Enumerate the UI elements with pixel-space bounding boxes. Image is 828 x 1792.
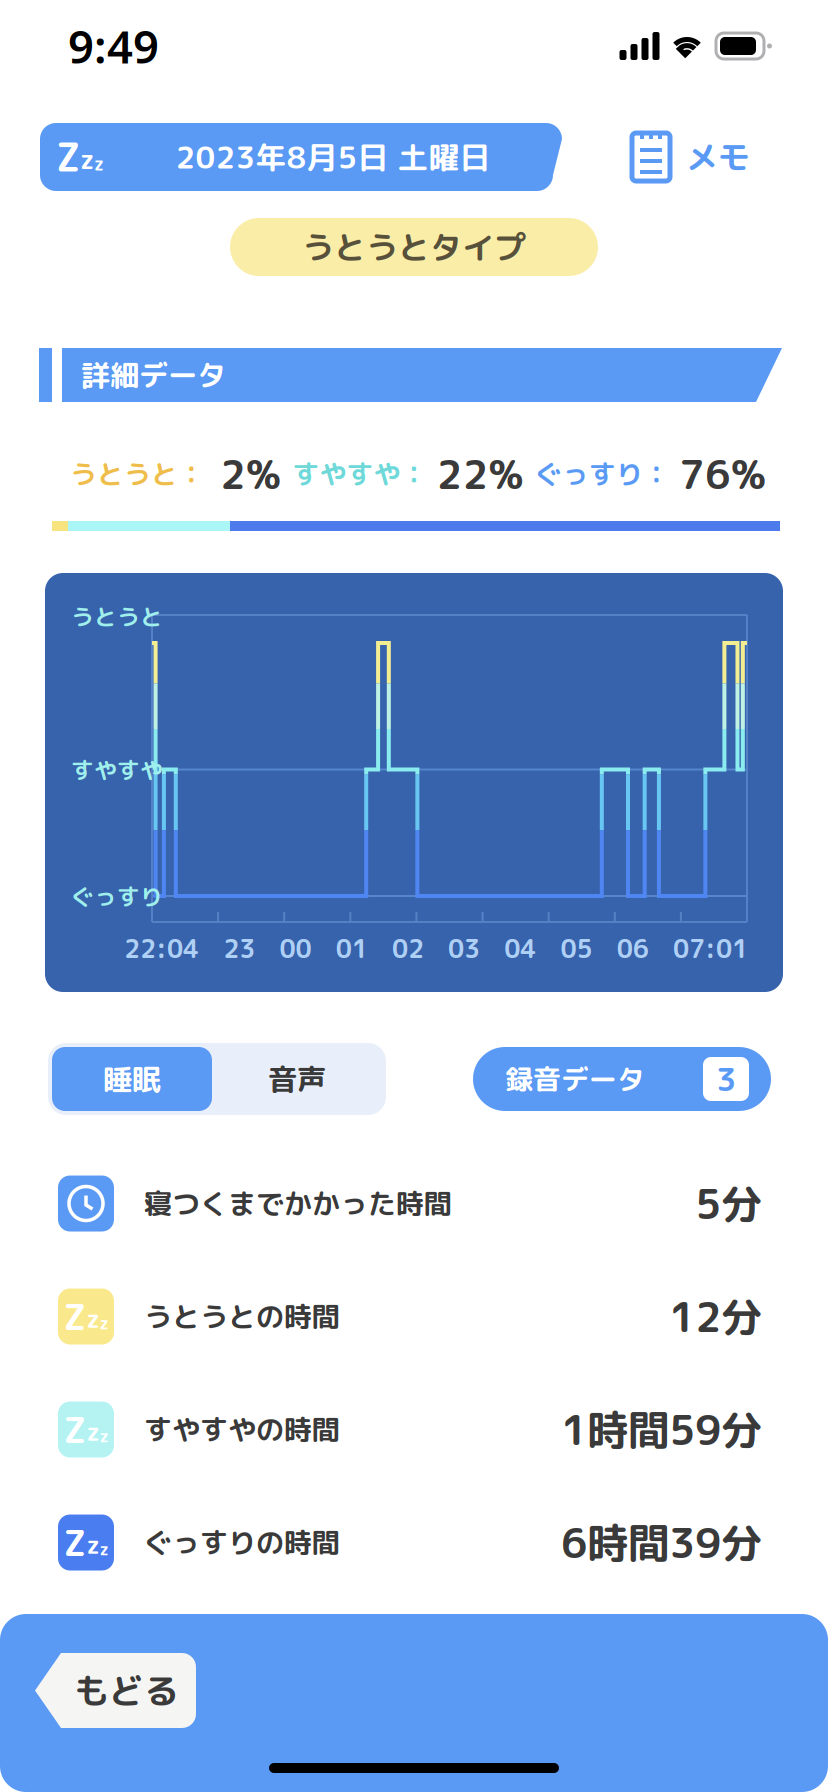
staticText: 00 xyxy=(279,931,311,966)
staticText: z xyxy=(99,1537,108,1560)
staticText: 1時間59分 xyxy=(561,1401,762,1458)
button[interactable]: もどる xyxy=(35,1653,196,1728)
staticText: z xyxy=(94,151,104,176)
staticText: Z xyxy=(63,1291,86,1342)
staticText: うとうとの時間 xyxy=(144,1297,340,1336)
staticText: うとうと xyxy=(71,601,163,633)
button[interactable]: Z xyxy=(0,1486,828,1599)
staticText: Z xyxy=(63,1404,86,1455)
staticText: 04 xyxy=(504,931,536,966)
staticText: z xyxy=(99,1311,108,1334)
staticText: 22:04 xyxy=(124,931,199,966)
button[interactable]: 睡眠 xyxy=(52,1047,212,1111)
button[interactable]: Z xyxy=(0,1260,828,1373)
staticText: 音声 xyxy=(268,1058,326,1099)
staticText: ぐっすり： xyxy=(535,455,670,493)
staticText: ぐっすりの時間 xyxy=(144,1523,340,1562)
staticText: Z xyxy=(56,130,80,184)
staticText: 06 xyxy=(617,931,649,966)
staticText: z xyxy=(80,142,94,177)
staticText: 睡眠 xyxy=(103,1058,161,1099)
staticText: 05 xyxy=(561,931,593,966)
staticText: 6時間39分 xyxy=(561,1514,762,1571)
button[interactable]: メモ xyxy=(630,131,750,183)
staticText: ぐっすり xyxy=(71,881,163,913)
staticText: 5分 xyxy=(695,1175,762,1232)
staticText: 02 xyxy=(392,931,424,966)
staticText: うとうとタイプ xyxy=(302,225,526,269)
staticText: 録音データ xyxy=(505,1059,645,1099)
button[interactable]: 音声 xyxy=(212,1047,382,1111)
staticText: 22% xyxy=(436,446,523,502)
staticText: z xyxy=(99,1424,108,1447)
staticText: Z xyxy=(63,1517,86,1568)
staticText: うとうと： xyxy=(70,455,205,493)
staticText: 03 xyxy=(448,931,480,966)
staticText: 07:01 xyxy=(673,931,748,966)
staticText: 23 xyxy=(223,931,255,966)
staticText: すやすや： xyxy=(292,455,427,493)
staticText: 詳細データ xyxy=(81,354,226,395)
staticText: 76% xyxy=(679,446,766,502)
staticText: すやすやの時間 xyxy=(144,1410,340,1449)
staticText: 9:49 xyxy=(68,16,159,76)
button[interactable]: Z xyxy=(0,1373,828,1486)
staticText: もどる xyxy=(74,1666,179,1715)
staticText: 3 xyxy=(716,1057,736,1101)
staticText: すやすや xyxy=(71,754,163,786)
staticText: 2% xyxy=(220,446,281,502)
staticText: z xyxy=(86,1302,99,1335)
button[interactable]: Z xyxy=(40,123,562,191)
staticText: 01 xyxy=(336,931,368,966)
staticText: メモ xyxy=(686,135,750,179)
staticText: 12分 xyxy=(669,1288,762,1345)
staticText: z xyxy=(86,1528,99,1561)
button[interactable]: 寝つくまでかかった時間 xyxy=(0,1147,828,1260)
button[interactable]: 録音データ xyxy=(473,1047,771,1111)
staticText: z xyxy=(86,1415,99,1448)
staticText: 寝つくまでかかった時間 xyxy=(144,1184,452,1223)
staticText: 2023年8月5日 土曜日 xyxy=(175,136,490,178)
